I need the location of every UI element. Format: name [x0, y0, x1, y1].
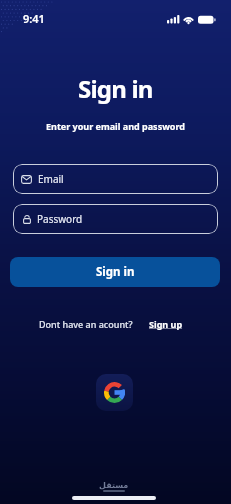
- staticText: Password: [37, 212, 83, 226]
- staticText: مستقل: [99, 481, 129, 490]
- button[interactable]: Sign in: [10, 257, 220, 287]
- staticText: Email: [38, 172, 64, 186]
- staticText: Sign in: [78, 72, 153, 105]
- staticText: Dont have an acount?: [39, 318, 133, 330]
- button[interactable]: [96, 374, 133, 411]
- button[interactable]: Email: [13, 164, 218, 194]
- button[interactable]: Sign up: [149, 318, 183, 330]
- button[interactable]: Password: [13, 204, 218, 234]
- staticText: Enter your email and password: [46, 120, 186, 132]
- staticText: Sign in: [96, 264, 135, 280]
- staticText: 9:41: [23, 11, 45, 26]
